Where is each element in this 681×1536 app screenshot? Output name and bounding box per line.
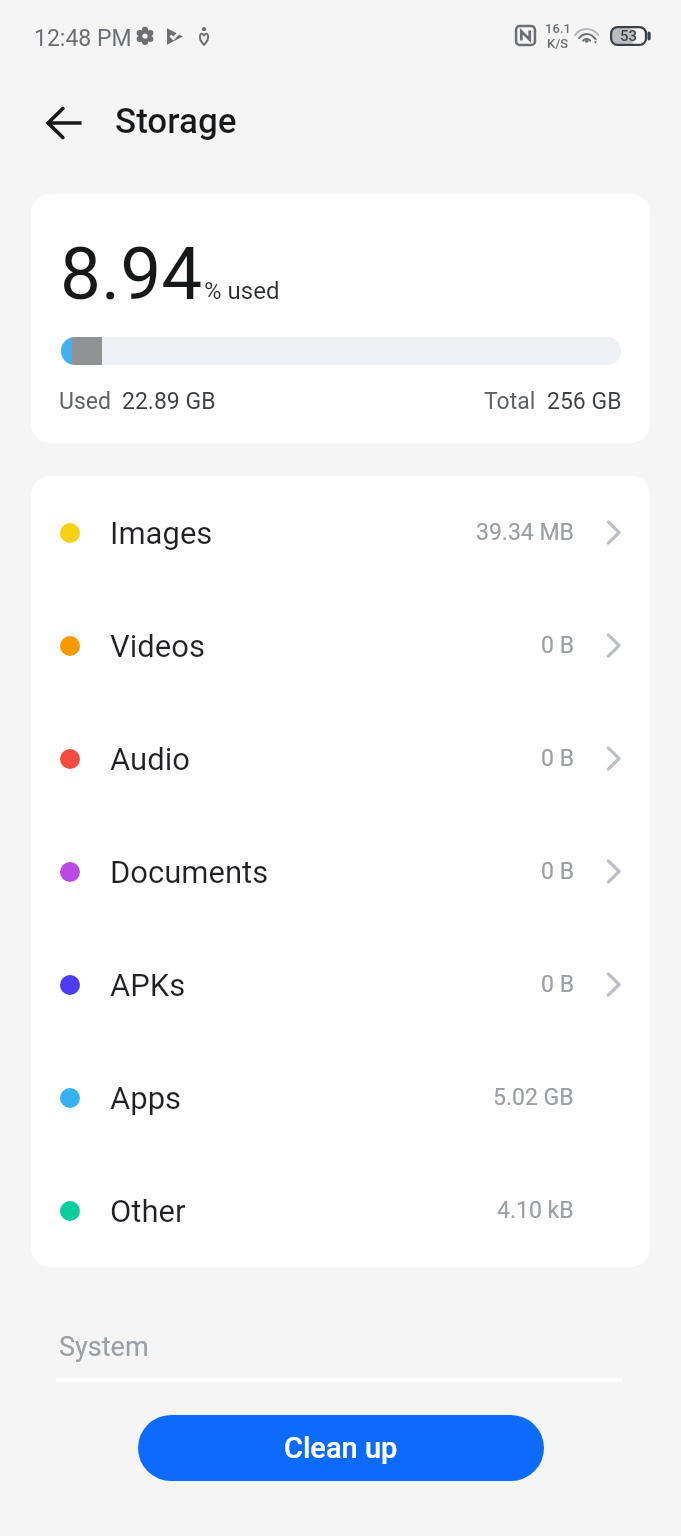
button[interactable]: Back <box>32 91 96 155</box>
staticText: 39.34 MB <box>476 519 574 546</box>
staticText: 22.89 GB <box>122 388 216 415</box>
button[interactable]: Videos <box>31 589 650 702</box>
staticText: 5.02 GB <box>493 1084 574 1111</box>
staticText: 0 B <box>541 971 574 998</box>
staticText: 0 B <box>541 745 574 772</box>
staticText: 4.10 kB <box>497 1197 574 1224</box>
button[interactable]: Apps <box>31 1041 650 1154</box>
staticText: Total <box>484 388 536 415</box>
staticText: Used <box>59 388 111 415</box>
button[interactable]: Other <box>31 1154 650 1267</box>
staticText: Clean up <box>284 1431 398 1465</box>
staticText: System <box>59 1331 149 1363</box>
staticText: 12:48 PM <box>34 25 132 52</box>
staticText: K/S <box>547 36 569 51</box>
button[interactable]: 8.94 <box>31 194 650 443</box>
staticText: Other <box>110 1193 186 1229</box>
staticText: Storage <box>115 101 237 142</box>
button[interactable]: APKs <box>31 928 650 1041</box>
button[interactable]: Images <box>31 476 650 589</box>
button[interactable]: Documents <box>31 815 650 928</box>
button[interactable]: Clean up <box>138 1415 544 1481</box>
staticText: APKs <box>110 967 186 1003</box>
staticText: Audio <box>110 741 190 777</box>
staticText: % used <box>204 277 280 305</box>
staticText: 8.94 <box>60 231 203 317</box>
staticText: 0 B <box>541 632 574 659</box>
staticText: Videos <box>110 628 205 664</box>
staticText: 0 B <box>541 858 574 885</box>
staticText: 256 GB <box>547 388 622 415</box>
staticText: Apps <box>110 1080 182 1116</box>
staticText: Images <box>110 515 213 551</box>
staticText: Documents <box>110 854 269 890</box>
staticText: 16.1 <box>545 21 571 36</box>
staticText: 53 <box>620 27 638 45</box>
button[interactable]: Audio <box>31 702 650 815</box>
